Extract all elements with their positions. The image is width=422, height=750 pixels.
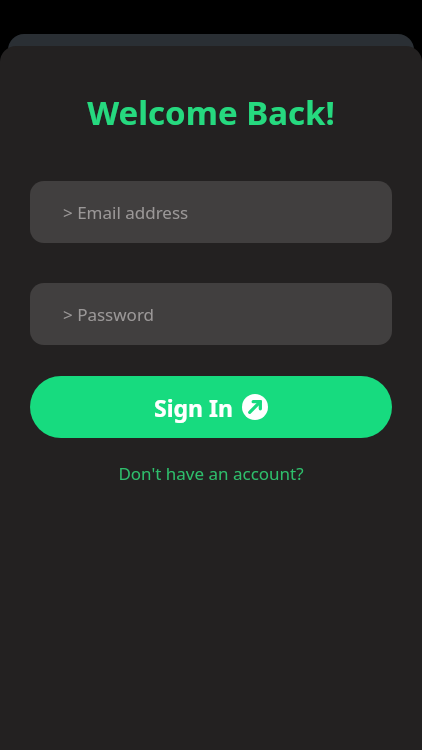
staticText: Welcome Back! (0, 90, 422, 135)
button[interactable]: > Email address (30, 181, 392, 243)
staticText: Sign In (154, 392, 233, 423)
staticText: > Password (63, 303, 155, 326)
staticText: > Email address (63, 201, 189, 224)
button[interactable]: Sign In (30, 376, 392, 438)
button[interactable]: > Password (30, 283, 392, 345)
other: Sign In (242, 394, 268, 420)
staticText: Don't have an account? (118, 462, 304, 485)
button[interactable]: Don't have an account? (0, 462, 422, 485)
